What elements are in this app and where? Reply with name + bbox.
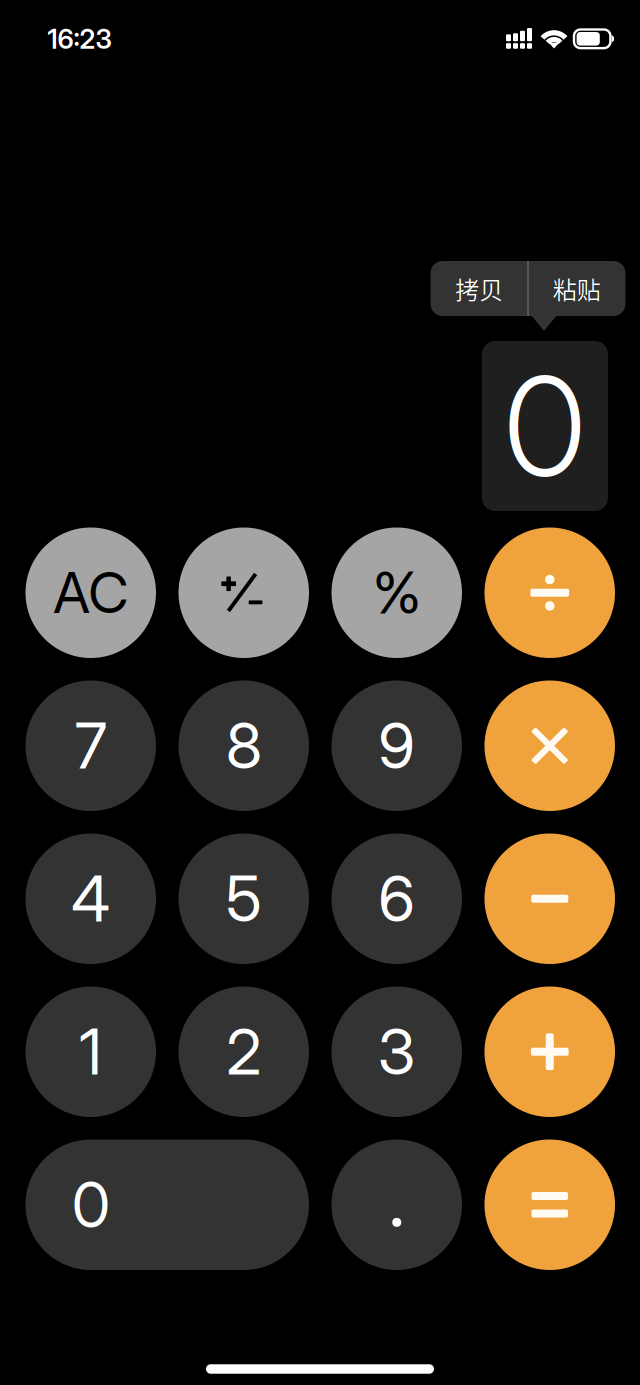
staticText: AC [53, 559, 128, 627]
button[interactable]: Toggle sign [178, 527, 309, 658]
staticText: 粘贴 [553, 271, 601, 306]
button[interactable]: 粘贴 [529, 261, 625, 316]
staticText: 5 [226, 861, 262, 937]
staticText: 拷贝 [455, 271, 503, 306]
staticText: 0 [504, 343, 586, 509]
button[interactable]: AC [25, 527, 156, 658]
staticText: 1 [79, 1014, 102, 1090]
button[interactable]: Subtract [484, 833, 615, 964]
button[interactable]: Equals [484, 1139, 615, 1270]
button[interactable]: 拷贝 [431, 261, 527, 316]
button[interactable]: 6 [331, 833, 462, 964]
staticText: 8 [226, 708, 262, 784]
button[interactable]: Decimal point [331, 1139, 462, 1270]
button[interactable]: 0 [25, 1139, 309, 1270]
staticText: 2 [226, 1014, 261, 1090]
button[interactable]: 9 [331, 680, 462, 811]
staticText: 0 [72, 1167, 110, 1243]
staticText: 7 [75, 708, 107, 784]
button[interactable]: 2 [178, 986, 309, 1117]
button[interactable]: 8 [178, 680, 309, 811]
button[interactable]: 7 [25, 680, 156, 811]
button[interactable]: 3 [331, 986, 462, 1117]
button[interactable]: Multiply [484, 680, 615, 811]
button[interactable]: 1 [25, 986, 156, 1117]
staticText: 4 [71, 861, 110, 937]
staticText: 9 [378, 708, 415, 784]
staticText: 16:23 [47, 23, 111, 55]
button[interactable]: Divide [484, 527, 615, 658]
button[interactable]: % [331, 527, 462, 658]
staticText: 3 [378, 1014, 416, 1090]
staticText: 6 [378, 861, 415, 937]
staticText: % [373, 558, 421, 627]
button[interactable]: 5 [178, 833, 309, 964]
button[interactable]: 4 [25, 833, 156, 964]
button[interactable]: Add [484, 986, 615, 1117]
